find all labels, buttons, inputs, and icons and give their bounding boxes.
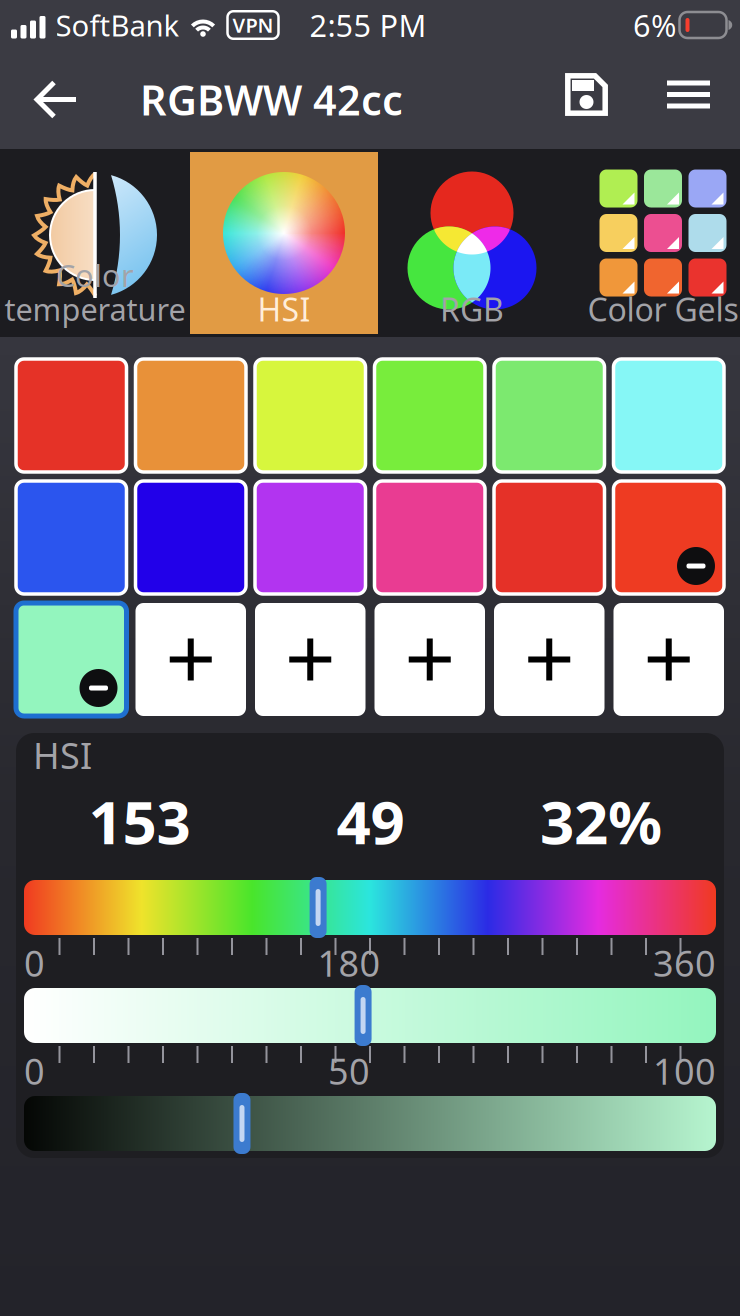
button[interactable] [494, 359, 604, 472]
button[interactable]: Back [0, 52, 140, 146]
staticText: temperature [4, 289, 185, 329]
button[interactable]: Add preset [135, 603, 246, 716]
staticText: Color Gels [587, 288, 738, 330]
staticText: 49 [336, 781, 404, 861]
button[interactable] [16, 359, 126, 472]
button[interactable]: RGB [378, 152, 566, 334]
button[interactable]: Menu [640, 50, 740, 149]
button[interactable]: Color [0, 152, 190, 334]
staticText: SoftBank [55, 5, 179, 44]
button[interactable]: Color Gels [566, 152, 740, 334]
button[interactable] [255, 481, 365, 594]
button[interactable] [135, 359, 246, 472]
button[interactable] [255, 359, 365, 472]
button[interactable]: Add preset [255, 603, 365, 716]
staticText: 0 [24, 939, 45, 987]
button[interactable]: Add preset [494, 603, 604, 716]
button[interactable] [613, 481, 724, 594]
button[interactable] [16, 481, 126, 594]
staticText: VPN [232, 12, 273, 38]
button[interactable]: Save [539, 50, 640, 149]
staticText: Color [56, 255, 134, 295]
staticText: 2:55 PM [309, 5, 426, 45]
staticText: HSI [33, 731, 92, 779]
staticText: HSI [257, 288, 310, 330]
staticText: 50 [328, 1047, 370, 1095]
button[interactable]: Add preset [374, 603, 485, 716]
staticText: 0 [24, 1047, 45, 1095]
button[interactable] [374, 359, 485, 472]
button[interactable]: HSI [190, 152, 378, 334]
staticText: 180 [317, 939, 380, 987]
staticText: 360 [653, 939, 716, 987]
staticText: 153 [88, 781, 190, 861]
staticText: 6% [633, 5, 676, 45]
staticText: RGBWW 42cc [140, 72, 403, 127]
button[interactable] [494, 481, 604, 594]
button[interactable] [16, 603, 126, 716]
button[interactable] [374, 481, 485, 594]
staticText: 100 [653, 1047, 716, 1095]
staticText: RGB [440, 288, 504, 330]
button[interactable] [613, 359, 724, 472]
button[interactable]: Add preset [613, 603, 724, 716]
staticText: 32% [540, 781, 662, 861]
button[interactable] [135, 481, 246, 594]
